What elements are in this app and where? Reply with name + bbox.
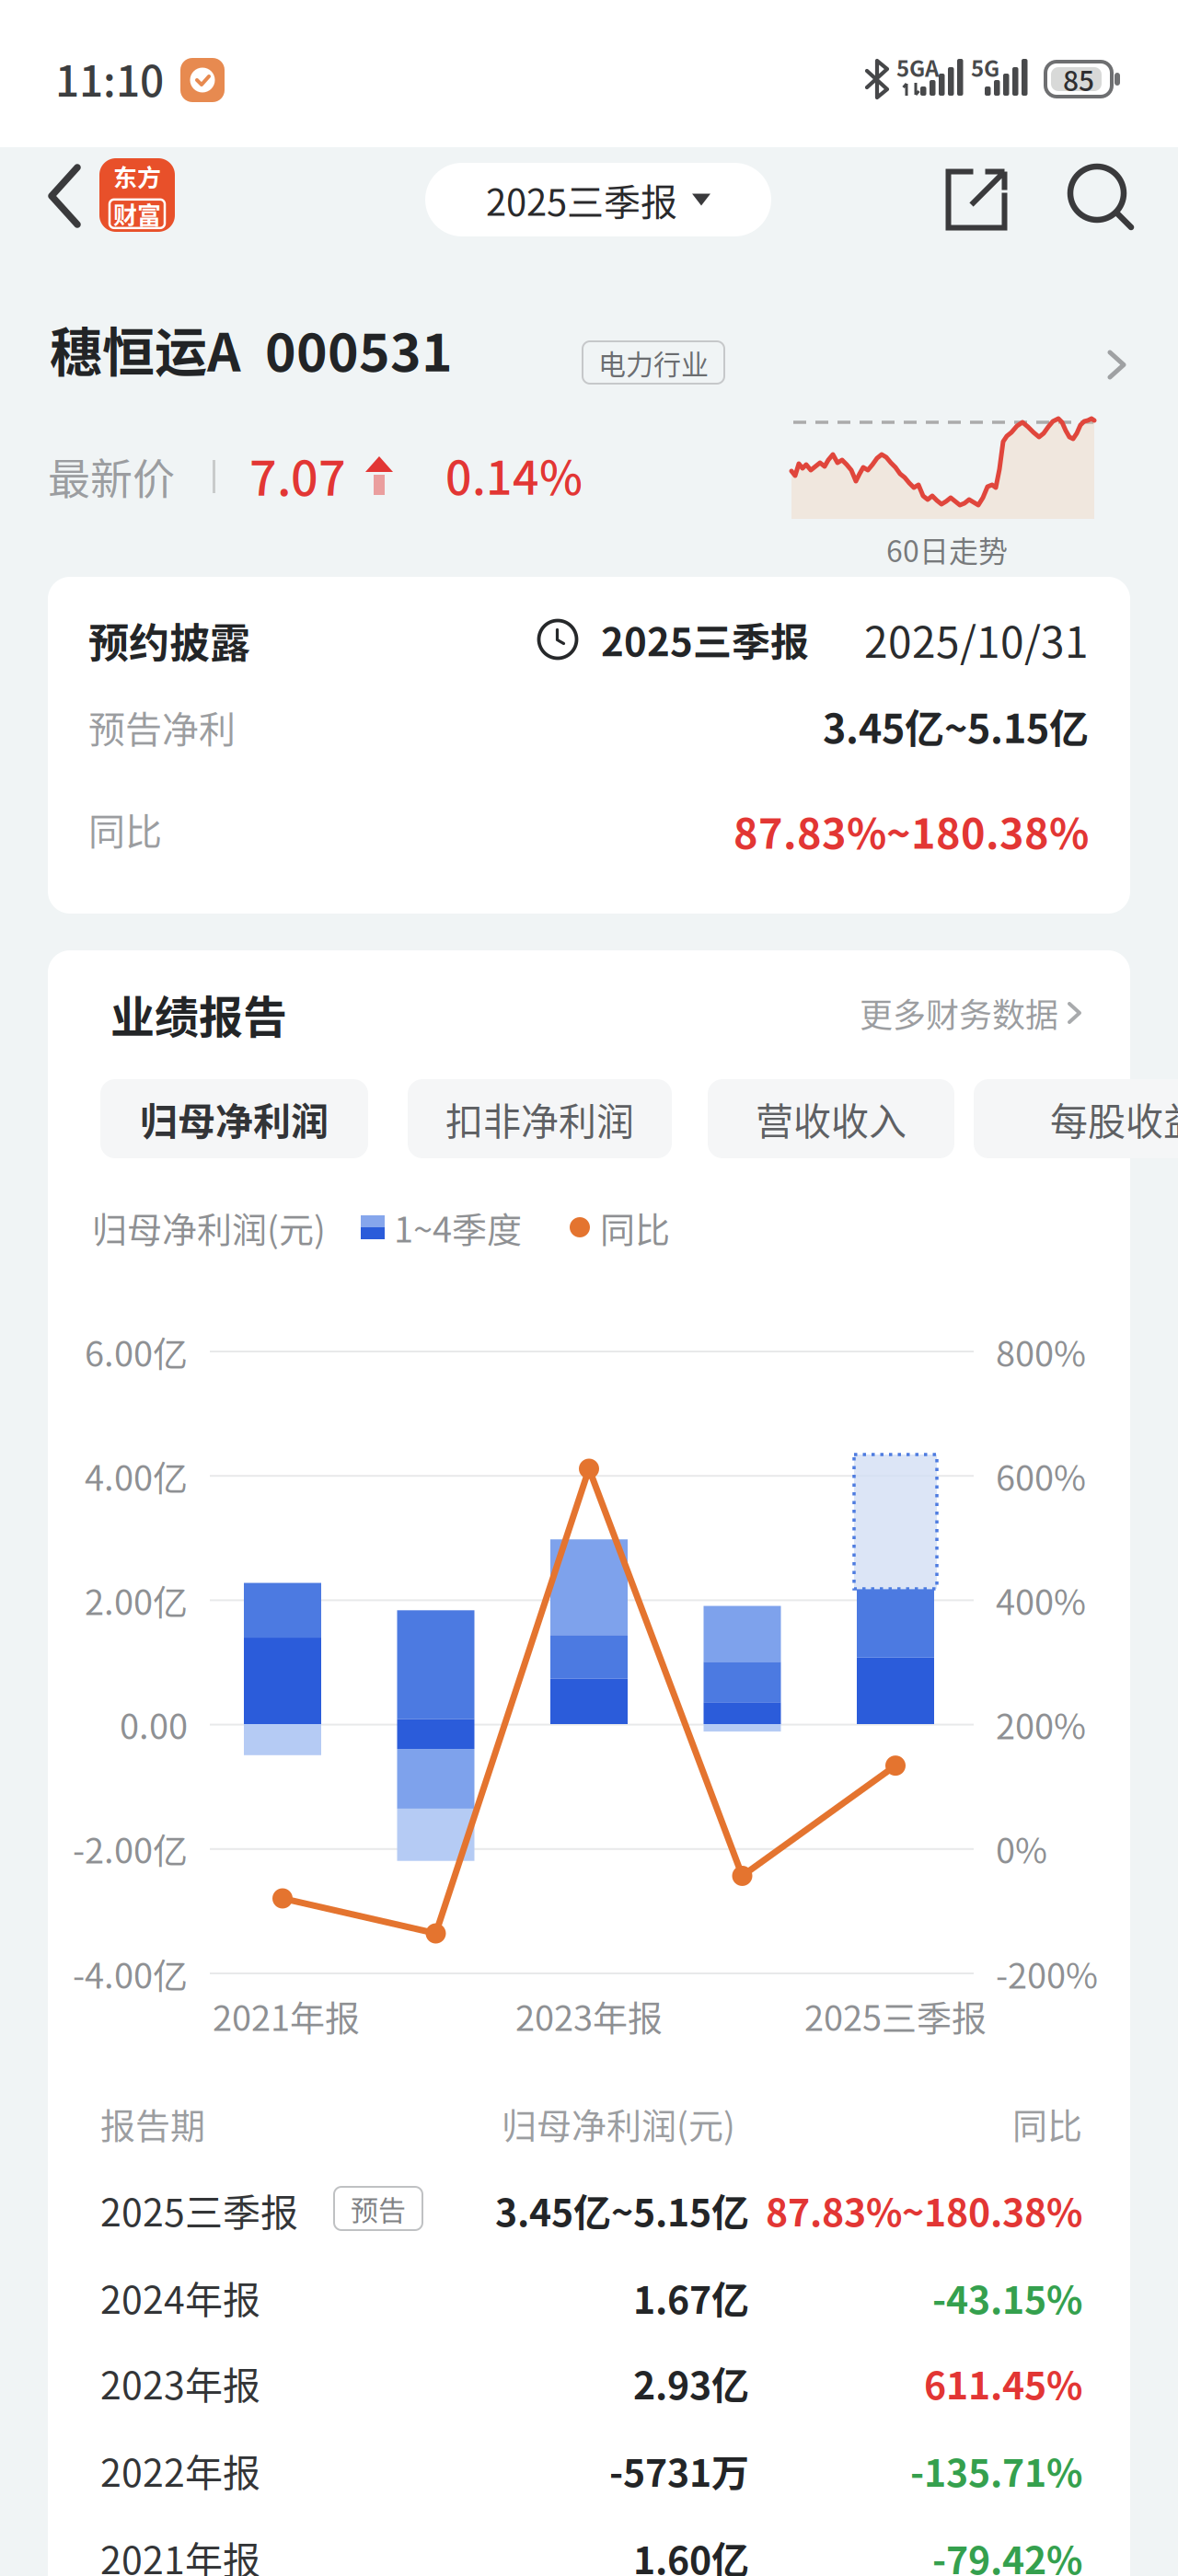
staticText: 预约披露 <box>88 611 250 670</box>
staticText: 7.07 <box>249 440 346 509</box>
staticText: 归母净利润(元) <box>502 2098 735 2149</box>
staticText: -5731万 <box>609 2443 749 2498</box>
staticText: 2.00亿 <box>85 1575 188 1625</box>
staticText: 611.45% <box>924 2355 1082 2410</box>
button[interactable]: 电力行业 <box>583 341 724 384</box>
staticText: 2025三季报 <box>601 611 809 667</box>
staticText: 0% <box>996 1823 1047 1874</box>
staticText: 归母净利润(元) <box>92 1202 326 1253</box>
staticText: 归母净利润 <box>140 1091 329 1146</box>
staticText: 11:10 <box>55 48 164 109</box>
staticText: 业绩报告 <box>110 982 287 1046</box>
staticText: -200% <box>996 1948 1098 1999</box>
button[interactable]: 更多财务数据 <box>797 985 1082 1041</box>
staticText: 同比 <box>600 1202 670 1253</box>
staticText: 电力行业 <box>598 343 709 382</box>
staticText: 2025三季报 <box>100 2183 298 2237</box>
staticText: 600% <box>996 1450 1086 1501</box>
staticText: 营收收入 <box>756 1091 907 1146</box>
staticText: 2023年报 <box>515 1990 663 2041</box>
staticText: 3.45亿~5.15亿 <box>495 2183 749 2237</box>
staticText: 1~4季度 <box>394 1202 522 1253</box>
button[interactable]: Search <box>1066 164 1136 234</box>
staticText: -43.15% <box>932 2270 1082 2325</box>
staticText: 东方 <box>113 159 161 194</box>
staticText: 800% <box>996 1326 1086 1377</box>
button[interactable]: 2025三季报 <box>425 163 771 236</box>
staticText: 预告 <box>351 2188 406 2228</box>
staticText: 5G <box>971 51 999 83</box>
staticText: 报告期 <box>100 2098 205 2149</box>
button[interactable]: Back <box>29 153 99 239</box>
staticText: 2025三季报 <box>486 173 677 226</box>
staticText: 1.67亿 <box>633 2270 749 2325</box>
staticText: 87.83%~180.38% <box>733 801 1089 861</box>
staticText: 财富 <box>113 196 161 231</box>
staticText: 2024年报 <box>100 2270 260 2325</box>
staticText: 2.93亿 <box>633 2355 749 2410</box>
staticText: -2.00亿 <box>73 1823 188 1874</box>
staticText: 87.83%~180.38% <box>766 2183 1082 2237</box>
staticText: 每股收益 <box>1050 1091 1178 1146</box>
staticText: 60日走势 <box>886 528 1008 570</box>
staticText: -135.71% <box>910 2443 1082 2498</box>
staticText: 2023年报 <box>100 2355 260 2410</box>
staticText: 4.00亿 <box>85 1450 188 1501</box>
staticText: 2025三季报 <box>804 1990 987 2041</box>
button[interactable]: 每股收益 <box>974 1079 1178 1158</box>
staticText: 扣非净利润 <box>445 1091 634 1146</box>
staticText: -4.00亿 <box>73 1948 188 1999</box>
staticText: 200% <box>996 1699 1086 1749</box>
staticText: 最新价 <box>48 445 175 506</box>
staticText: 85 <box>1063 59 1094 99</box>
staticText: 同比 <box>1012 2098 1082 2149</box>
button[interactable]: 股票详情 <box>1104 347 1130 384</box>
staticText: 400% <box>996 1575 1086 1625</box>
staticText: 2025/10/31 <box>864 609 1089 670</box>
staticText: 2022年报 <box>100 2443 260 2498</box>
staticText: 2021年报 <box>100 2530 260 2576</box>
button[interactable]: 营收收入 <box>708 1079 954 1158</box>
staticText: 2021年报 <box>213 1990 360 2041</box>
staticText: 1.60亿 <box>633 2530 749 2576</box>
staticText: 0.14% <box>445 441 583 508</box>
staticText: -79.42% <box>932 2530 1082 2576</box>
staticText: 穗恒运A 000531 <box>50 311 453 387</box>
staticText: 5GA <box>896 51 939 83</box>
staticText: 更多财务数据 <box>860 989 1058 1037</box>
button[interactable]: 归母净利润 <box>100 1079 368 1158</box>
staticText: 预告净利 <box>88 700 236 753</box>
staticText: 0.00 <box>120 1699 188 1749</box>
staticText: 3.45亿~5.15亿 <box>823 697 1089 755</box>
button[interactable]: Share <box>944 167 1009 232</box>
button[interactable]: 扣非净利润 <box>408 1079 672 1158</box>
staticText: 同比 <box>88 802 162 856</box>
staticText: 6.00亿 <box>85 1326 188 1377</box>
